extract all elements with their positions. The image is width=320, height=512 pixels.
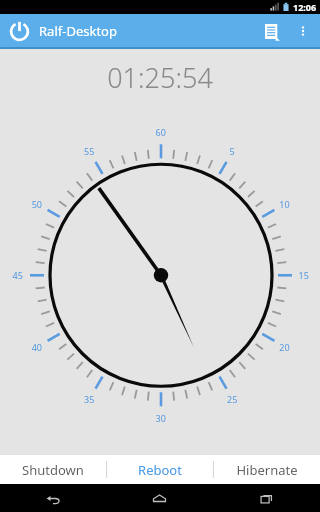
- staticText: 01:25:54: [107, 59, 213, 96]
- button[interactable]: Home: [106, 484, 213, 512]
- staticText: Hibernate: [236, 461, 298, 479]
- button[interactable]: Reboot: [107, 455, 213, 484]
- button[interactable]: Log: [256, 15, 288, 47]
- button[interactable]: Hibernate: [214, 455, 320, 484]
- staticText: Reboot: [138, 461, 182, 479]
- staticText: Shutdown: [22, 461, 84, 479]
- button[interactable]: Recents: [213, 484, 320, 512]
- button[interactable]: Back: [0, 484, 106, 512]
- button[interactable]: More options: [288, 16, 318, 46]
- button[interactable]: Up: [4, 16, 34, 46]
- staticText: Ralf-Desktop: [39, 22, 117, 40]
- staticText: 12:06: [293, 1, 317, 13]
- button[interactable]: Shutdown: [0, 455, 106, 484]
